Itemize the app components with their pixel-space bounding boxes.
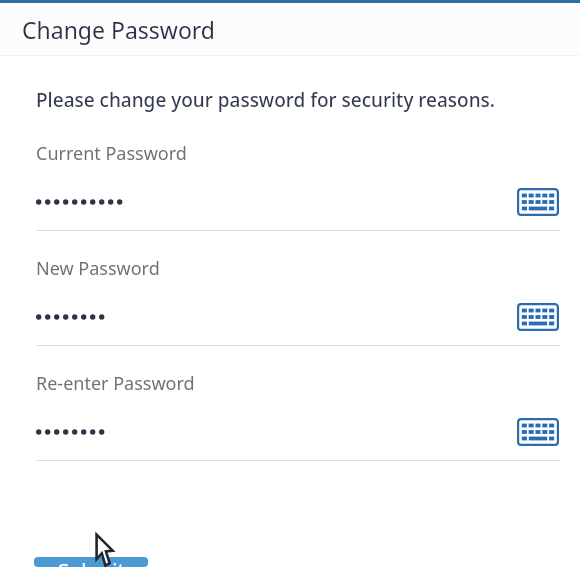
button[interactable]: Show keyboard (516, 302, 560, 332)
staticText: Change Password (22, 14, 215, 45)
button[interactable]: Submit (34, 557, 148, 567)
button[interactable]: Show keyboard (0, 182, 580, 222)
button[interactable]: Show keyboard (516, 417, 560, 447)
button[interactable]: Show keyboard (0, 297, 580, 337)
button[interactable]: Show keyboard (0, 412, 580, 452)
staticText: Current Password (36, 141, 187, 166)
button[interactable]: Show keyboard (516, 187, 560, 217)
staticText: New Password (36, 256, 160, 281)
staticText: Submit (58, 557, 125, 567)
staticText: Re-enter Password (36, 371, 195, 396)
staticText: Please change your password for security… (36, 87, 495, 113)
